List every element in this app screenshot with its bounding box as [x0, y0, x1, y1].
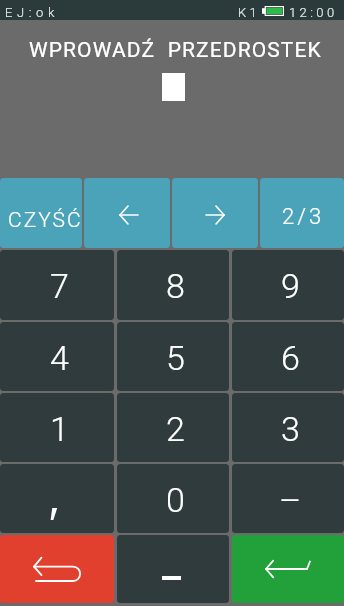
staticText: 1: [50, 409, 69, 449]
staticText: 2: [166, 409, 185, 449]
staticText: EJ:ok: [5, 5, 59, 20]
staticText: 12:00: [289, 5, 338, 20]
button[interactable]: 4: [0, 322, 114, 391]
button[interactable]: 7: [0, 250, 114, 320]
button[interactable]: 2: [117, 393, 229, 462]
button[interactable]: Undo: [0, 535, 114, 603]
staticText: 6: [281, 338, 300, 378]
staticText: 9: [281, 266, 300, 306]
staticText: 3: [281, 409, 300, 449]
button[interactable]: 2/3: [260, 178, 344, 248]
staticText: K1: [238, 5, 261, 20]
button[interactable]: Move cursor right: [172, 178, 258, 248]
staticText: 7: [50, 266, 69, 306]
button[interactable]: Move cursor left: [84, 178, 170, 248]
staticText: 8: [166, 266, 185, 306]
button[interactable]: 8: [117, 250, 229, 320]
staticText: 2/3: [282, 204, 325, 230]
staticText: 5: [166, 338, 185, 378]
button[interactable]: CZYŚĆ: [0, 178, 82, 248]
button[interactable]: [0, 464, 114, 533]
button[interactable]: 1: [0, 393, 114, 462]
staticText: –: [279, 480, 302, 520]
button[interactable]: 5: [117, 322, 229, 391]
button[interactable]: 9: [232, 250, 344, 320]
button[interactable]: Enter: [232, 535, 344, 603]
button[interactable]: [117, 535, 229, 603]
button[interactable]: 6: [232, 322, 344, 391]
staticText: 0: [166, 480, 185, 520]
staticText: 4: [50, 338, 69, 378]
button[interactable]: 3: [232, 393, 344, 462]
staticText: CZYŚĆ: [8, 208, 82, 233]
button[interactable]: 0: [117, 464, 229, 533]
staticText: WPROWADŹ PRZEDROSTEK: [29, 38, 322, 63]
button[interactable]: –: [232, 464, 344, 533]
